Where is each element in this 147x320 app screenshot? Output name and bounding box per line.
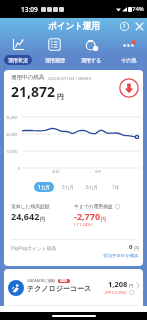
staticText: 運用状況 [8, 57, 28, 63]
staticText: ? [123, 23, 126, 30]
button[interactable]: 引き出す [119, 78, 139, 98]
staticText: 円 [57, 92, 64, 101]
button[interactable]: 付与予定日を確認 [103, 253, 139, 259]
staticText: 4/25 [52, 169, 60, 174]
button[interactable]: 6カ月 [82, 182, 102, 192]
staticText: 追加した残高総額 [11, 203, 50, 209]
staticText: 74% [132, 5, 144, 13]
staticText: 円 [133, 245, 139, 251]
staticText: 36,000 [6, 115, 18, 120]
staticText: 24,642 [11, 210, 40, 222]
staticText: NEW [60, 279, 68, 283]
staticText: 円 [101, 216, 106, 222]
staticText: 21,872 [11, 82, 56, 101]
button[interactable]: 運用履歴 [36, 35, 73, 69]
button[interactable]: 運用する [73, 35, 110, 69]
button[interactable]: 運用状況 [0, 35, 36, 69]
staticText: 24,000 [6, 132, 18, 137]
button[interactable]: 閉じる [132, 19, 147, 34]
staticText: -2,770 [74, 210, 101, 222]
staticText: 3カ月 [62, 184, 74, 190]
button[interactable]: 1カ月 [34, 182, 54, 192]
staticText: (-11.24%) [74, 222, 93, 228]
staticText: その他 [121, 57, 137, 63]
staticText: 円 [128, 283, 134, 289]
staticText: GAFAM等に連動 [27, 278, 56, 283]
staticText: PayPayポイント残高 [11, 245, 57, 252]
staticText: テクノロジーコース [27, 284, 92, 293]
staticText: 6カ月 [86, 184, 98, 190]
staticText: 円 [40, 216, 45, 222]
staticText: 運用履歴 [45, 57, 65, 63]
staticText: -3円 (-0.25%) [104, 290, 127, 295]
button[interactable]: GAFAM等に連動 [4, 269, 143, 305]
staticText: 付与予定日を確認 [103, 253, 139, 259]
staticText: 運用中の残高 [11, 74, 45, 81]
staticText: 13:09 [21, 5, 38, 14]
staticText: 1カ月 [38, 184, 50, 190]
button[interactable]: その他 [110, 35, 147, 69]
staticText: 12,000 [6, 149, 18, 154]
button[interactable]: ヘルプ [117, 19, 132, 34]
staticText: 5/9 [95, 169, 101, 174]
button[interactable]: 1年 [108, 182, 124, 192]
staticText: 0 [129, 243, 133, 251]
staticText: 1,208 [108, 279, 128, 289]
staticText: 1年 [112, 184, 120, 190]
staticText: 0 [18, 166, 21, 171]
staticText: ポイント運用 [48, 21, 100, 32]
staticText: 今までの運用損益 [74, 203, 113, 209]
staticText: 運用する [81, 57, 102, 63]
button[interactable]: 3カ月 [58, 182, 78, 192]
staticText: 2022年5月14日 13時00分 [48, 76, 92, 81]
